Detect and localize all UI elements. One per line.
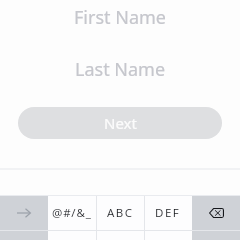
button[interactable]: Symbols <box>48 195 96 230</box>
button[interactable]: A B C <box>96 195 144 230</box>
button[interactable]: Next <box>18 107 222 139</box>
button[interactable]: Next field <box>0 195 48 230</box>
staticText: Last Name <box>75 57 166 82</box>
staticText: @#/&_ <box>52 205 92 221</box>
button[interactable]: Backspace <box>192 195 240 230</box>
staticText: ABC <box>107 205 134 221</box>
button[interactable]: D E F <box>144 195 192 230</box>
staticText: DEF <box>155 205 181 221</box>
staticText: Next <box>104 113 137 133</box>
button[interactable]: First Name <box>0 0 240 34</box>
staticText: First Name <box>74 5 166 30</box>
button[interactable]: Last Name <box>0 52 240 86</box>
